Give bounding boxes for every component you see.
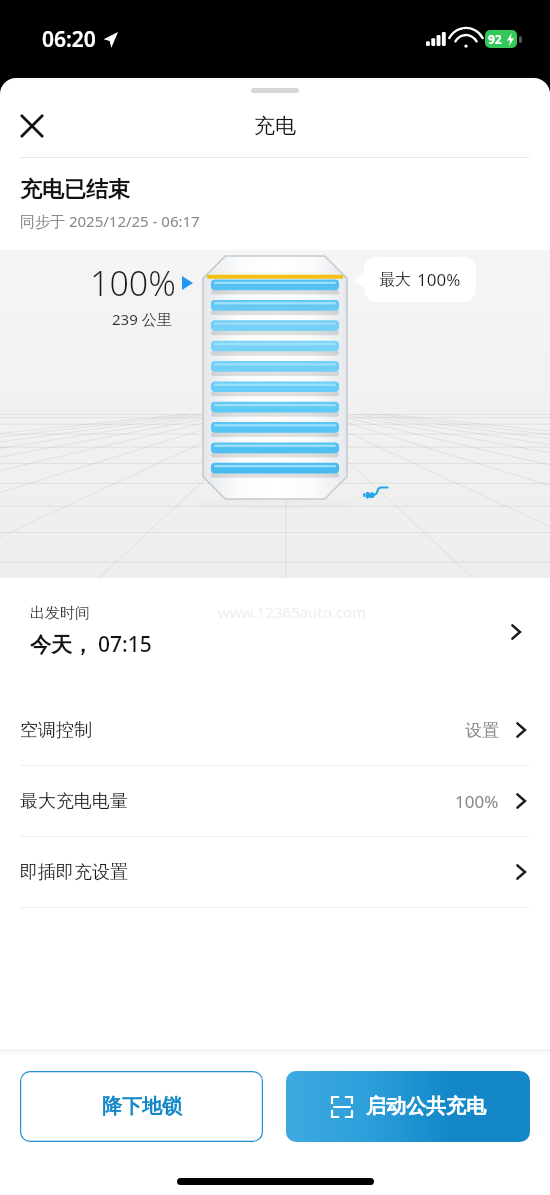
button[interactable]: Close: [8, 102, 56, 150]
staticText: 设置: [465, 720, 499, 741]
button[interactable]: 空调控制: [0, 695, 550, 765]
staticText: 100%: [417, 268, 461, 291]
staticText: 100%: [455, 790, 499, 813]
staticText: 最大: [379, 270, 411, 290]
staticText: 92: [488, 31, 502, 47]
staticText: 即插即充设置: [20, 861, 128, 884]
staticText: 239 公里: [112, 309, 172, 329]
button[interactable]: 最大充电电量: [0, 766, 550, 836]
staticText: 06:20: [42, 25, 96, 54]
staticText: 出发时间: [30, 604, 90, 623]
staticText: 同步于 2025/12/25 - 06:17: [20, 211, 200, 231]
staticText: 07:15: [98, 630, 152, 659]
button[interactable]: 即插即充设置: [0, 837, 550, 907]
staticText: 今天，: [30, 632, 93, 658]
staticText: 空调控制: [20, 719, 92, 742]
staticText: 启动公共充电: [366, 1094, 486, 1119]
staticText: www.12365auto.com: [218, 602, 367, 622]
button[interactable]: 出发时间: [11, 587, 539, 678]
staticText: 充电: [254, 113, 296, 139]
staticText: 充电已结束: [20, 176, 130, 204]
staticText: 100%: [90, 260, 176, 306]
button[interactable]: 启动公共充电: [286, 1071, 530, 1142]
staticText: 最大充电电量: [20, 790, 128, 813]
button[interactable]: 降下地锁: [20, 1071, 263, 1142]
staticText: 降下地锁: [102, 1094, 182, 1119]
